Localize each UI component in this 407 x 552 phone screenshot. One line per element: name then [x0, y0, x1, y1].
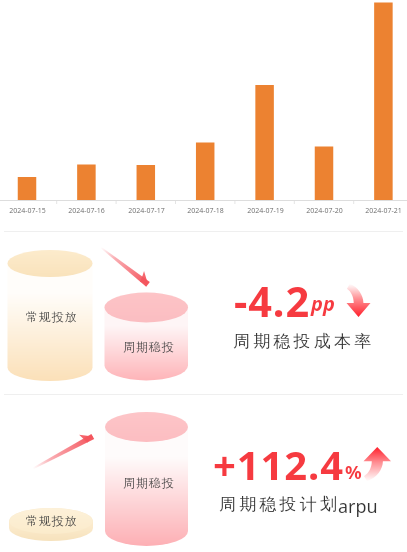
staticText: % [345, 459, 362, 484]
staticText: 2024-07-19 [247, 206, 284, 216]
staticText: 2024-07-15 [9, 206, 46, 216]
staticText: 2024-07-21 [365, 206, 402, 216]
staticText: 周期稳投 [123, 339, 175, 354]
staticText: 2024-07-18 [187, 206, 224, 216]
staticText: 2024-07-16 [68, 206, 105, 216]
staticText: -4.2 [234, 273, 311, 330]
staticText: 周期稳投成本率 [233, 331, 375, 352]
staticText: 2024-07-20 [306, 206, 343, 216]
staticText: arpu [338, 494, 378, 519]
staticText: 周期稳投 [123, 475, 175, 490]
staticText: +112.4 [213, 437, 345, 491]
staticText: 常规投放 [26, 513, 78, 528]
staticText: pp [311, 290, 335, 317]
staticText: 2024-07-17 [128, 206, 165, 216]
staticText: 周期稳投计划 [219, 494, 341, 515]
staticText: 常规投放 [26, 309, 78, 324]
